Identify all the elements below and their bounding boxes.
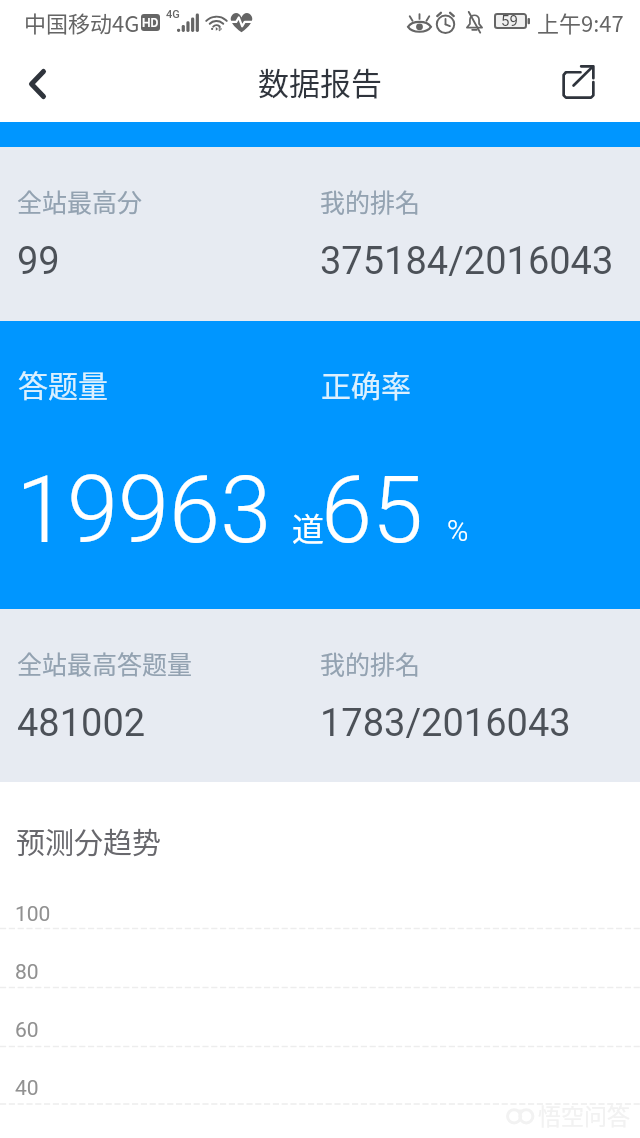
button[interactable]: Back — [0, 45, 68, 122]
staticText: 中国移动4G — [24, 6, 140, 38]
staticText: 19963 — [16, 457, 272, 565]
staticText: 上午9:47 — [537, 6, 624, 38]
staticText: 80 — [15, 960, 39, 985]
button[interactable]: Share — [540, 45, 640, 122]
staticText: 59 — [501, 12, 518, 30]
staticText: 正确率 — [321, 362, 411, 405]
staticText: 375184/2016043 — [320, 239, 614, 284]
staticText: 65 — [321, 457, 424, 565]
staticText: 100 — [15, 902, 51, 927]
staticText: 40 — [15, 1076, 39, 1101]
staticText: % — [447, 514, 469, 548]
staticText: 全站最高答题量 — [17, 645, 193, 681]
staticText: 1783/2016043 — [320, 701, 571, 746]
staticText: 481002 — [17, 701, 146, 746]
staticText: 我的排名 — [320, 645, 421, 681]
staticText: 99 — [17, 239, 60, 284]
staticText: 我的排名 — [320, 183, 421, 219]
staticText: 60 — [15, 1018, 39, 1043]
staticText: 悟空问答 — [538, 1098, 630, 1131]
staticText: 道 — [292, 504, 325, 550]
staticText: 预测分趋势 — [16, 820, 162, 862]
staticText: 全站最高分 — [17, 183, 143, 219]
staticText: 数据报告 — [258, 59, 382, 104]
staticText: HD — [142, 16, 159, 30]
staticText: 答题量 — [18, 362, 108, 405]
staticText: 4G — [166, 8, 180, 21]
